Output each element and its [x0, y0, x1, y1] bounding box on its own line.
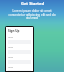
staticText: Get Started: [21, 1, 44, 6]
staticText: Label: [8, 66, 14, 69]
staticText: Label: [8, 56, 14, 59]
staticText: Lorem ipsum dolor sit amet consectetur a…: [5, 9, 59, 20]
staticText: Label: [8, 46, 14, 49]
staticText: Sign Up: [8, 29, 20, 33]
staticText: Label: [8, 36, 14, 39]
